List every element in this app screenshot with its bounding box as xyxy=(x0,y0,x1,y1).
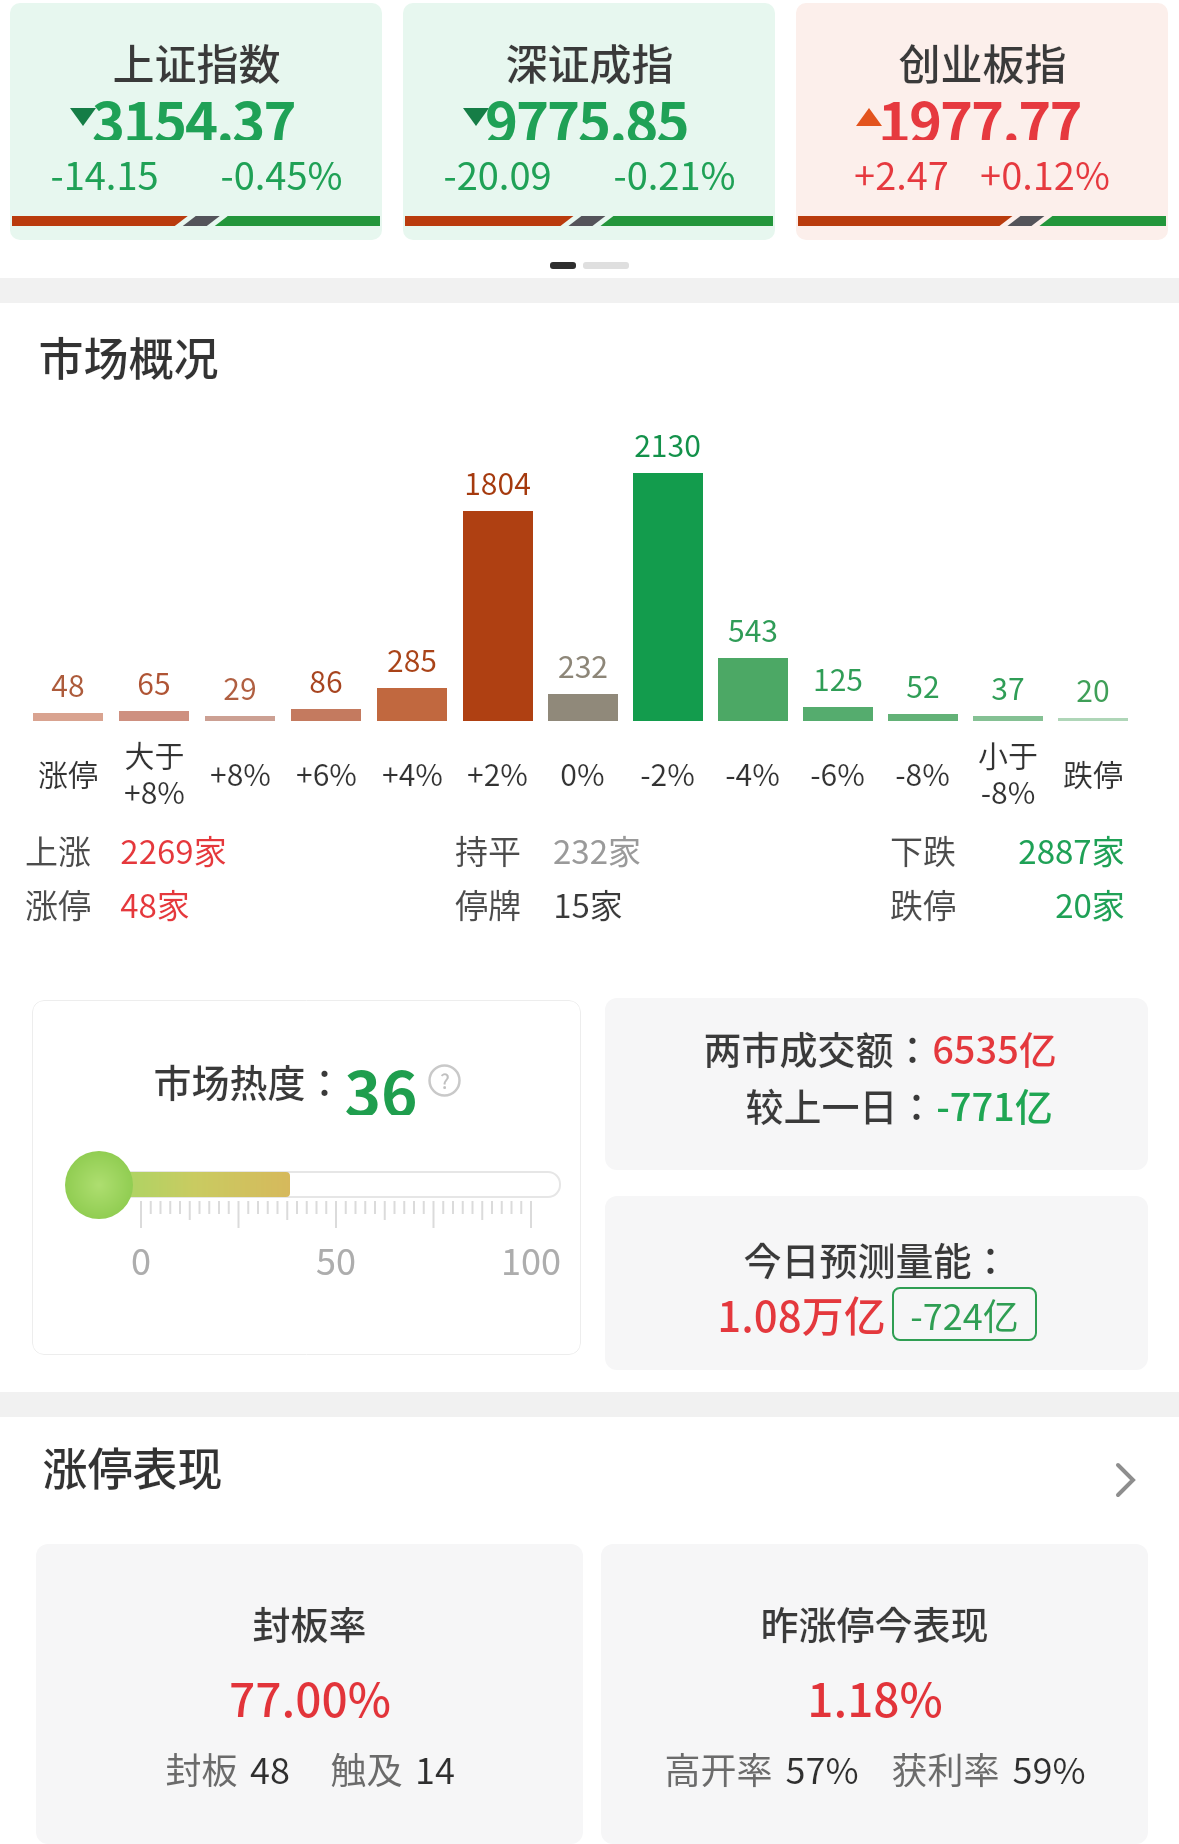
staticText: 封板 xyxy=(165,1742,238,1794)
button[interactable]: 封板率 xyxy=(36,1544,583,1844)
button[interactable]: 今日预测量能： xyxy=(605,1196,1148,1370)
staticText: 昨涨停今表现 xyxy=(760,1595,989,1650)
staticText: 两市成交额： xyxy=(703,1020,932,1075)
staticText: 2887家 xyxy=(1018,826,1125,874)
staticText: 1804 xyxy=(464,460,531,503)
button[interactable]: 市场热度： xyxy=(32,1000,581,1355)
staticText: 持平 xyxy=(455,826,521,874)
staticText: 1.18% xyxy=(807,1664,943,1731)
staticText: 1.08万亿 xyxy=(717,1283,886,1344)
staticText: +6% xyxy=(296,751,357,794)
staticText: 0 xyxy=(131,1233,151,1285)
staticText: -2% xyxy=(640,751,695,794)
staticText: +4% xyxy=(382,751,443,794)
staticText: +2.47 xyxy=(854,146,949,198)
staticText: 50 xyxy=(316,1233,356,1285)
staticText: 20家 xyxy=(1055,880,1125,928)
staticText: 大于 +8% xyxy=(124,732,185,813)
staticText: -6% xyxy=(810,751,865,794)
staticText: 高开率 xyxy=(664,1742,773,1794)
staticText: 100 xyxy=(501,1233,561,1285)
staticText: 37 xyxy=(991,665,1025,708)
staticText: -771亿 xyxy=(936,1077,1053,1132)
staticText: 9775.85 xyxy=(485,78,688,140)
staticText: 77.00% xyxy=(229,1664,391,1731)
staticText: 跌停 xyxy=(890,880,956,928)
staticText: 获利率 xyxy=(891,1742,1000,1794)
staticText: 较上一日： xyxy=(745,1077,936,1132)
staticText: 57% xyxy=(785,1742,859,1794)
staticText: 涨停表现 xyxy=(42,1434,223,1499)
staticText: 29 xyxy=(223,665,257,708)
staticText: 59% xyxy=(1012,1742,1086,1794)
staticText: 6535亿 xyxy=(932,1020,1057,1075)
staticText: -14.15 xyxy=(50,146,159,198)
staticText: 232家 xyxy=(553,826,641,874)
button[interactable]: 昨涨停今表现 xyxy=(601,1544,1148,1844)
staticText: 下跌 xyxy=(890,826,956,874)
staticText: 48 xyxy=(51,662,85,705)
staticText: 232 xyxy=(558,643,608,686)
staticText: 2130 xyxy=(634,422,701,465)
staticText: 20 xyxy=(1076,667,1110,710)
staticText: 36 xyxy=(344,1045,418,1115)
staticText: -8% xyxy=(895,751,950,794)
staticText: ? xyxy=(440,1066,450,1095)
staticText: 深证成指 xyxy=(505,31,674,86)
button[interactable]: 涨停表现 xyxy=(0,1425,1179,1535)
staticText: 停牌 xyxy=(455,880,521,928)
staticText: 125 xyxy=(813,656,863,699)
staticText: 48家 xyxy=(120,880,190,928)
staticText: 市场概况 xyxy=(38,324,219,389)
staticText: 上证指数 xyxy=(112,31,281,86)
staticText: 3154.37 xyxy=(92,78,295,140)
staticText: 285 xyxy=(387,637,437,680)
staticText: 涨停 xyxy=(38,751,98,794)
staticText: 涨停 xyxy=(25,880,91,928)
staticText: 86 xyxy=(309,658,343,701)
staticText: -4% xyxy=(725,751,780,794)
staticText: -0.21% xyxy=(613,146,736,198)
staticText: 14 xyxy=(415,1742,455,1794)
staticText: 15家 xyxy=(553,880,623,928)
staticText: 上涨 xyxy=(25,826,91,874)
staticText: 封板率 xyxy=(252,1595,367,1650)
staticText: 触及 xyxy=(330,1742,403,1794)
staticText: -724亿 xyxy=(910,1288,1019,1340)
staticText: 2269家 xyxy=(120,826,227,874)
staticText: 543 xyxy=(728,607,778,650)
staticText: 1977.77 xyxy=(878,78,1081,140)
staticText: +0.12% xyxy=(980,146,1110,198)
staticText: 0% xyxy=(560,751,605,794)
staticText: +8% xyxy=(210,751,271,794)
staticText: 48 xyxy=(250,1742,290,1794)
button[interactable]: 创业板指 xyxy=(796,3,1168,240)
staticText: 今日预测量能： xyxy=(743,1231,1010,1286)
staticText: 跌停 xyxy=(1063,751,1123,794)
staticText: -0.45% xyxy=(220,146,343,198)
button[interactable]: 深证成指 xyxy=(403,3,775,240)
button[interactable]: 两市成交额： xyxy=(605,998,1148,1170)
staticText: -20.09 xyxy=(443,146,552,198)
staticText: 65 xyxy=(137,660,171,703)
staticText: 52 xyxy=(906,663,940,706)
staticText: 小于 -8% xyxy=(978,732,1038,813)
staticText: +2% xyxy=(467,751,528,794)
staticText: 创业板指 xyxy=(898,31,1067,86)
staticText: 市场热度： xyxy=(153,1053,344,1108)
button[interactable]: 上证指数 xyxy=(10,3,382,240)
